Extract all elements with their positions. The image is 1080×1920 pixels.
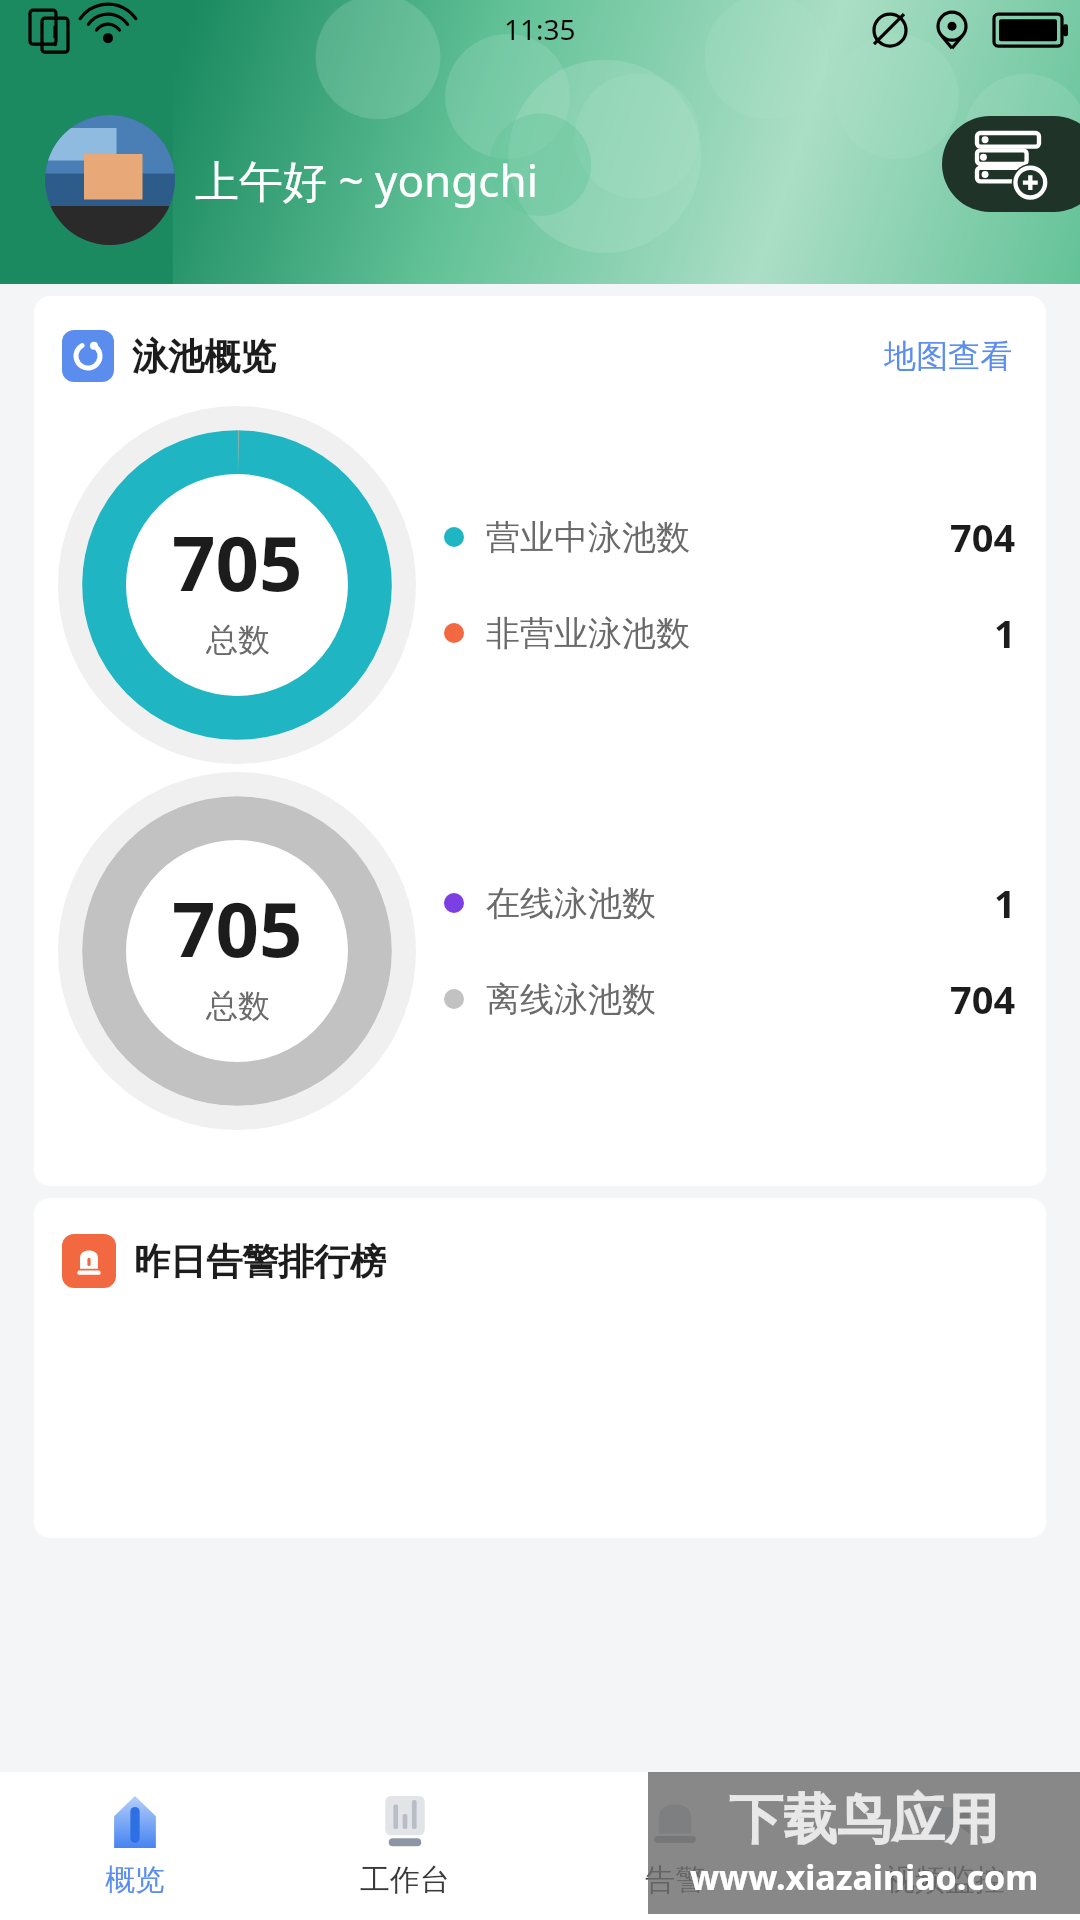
staticText: 地图查看 [884, 336, 1012, 376]
button[interactable]: 地图查看 [878, 330, 1018, 382]
button[interactable]: Add device [942, 116, 1080, 212]
staticText: 昨日告警排行榜 [134, 1239, 386, 1284]
staticText: 上午好 ~ yongchi [195, 150, 539, 210]
button[interactable]: 告警 [540, 1772, 810, 1920]
staticText: 在线泳池数 [486, 882, 656, 925]
staticText: 下载鸟应用 [729, 1786, 999, 1854]
staticText: 704 [950, 511, 1016, 563]
staticText: 非营业泳池数 [486, 612, 690, 655]
button[interactable]: 工作台 [270, 1772, 540, 1920]
staticText: 705 [172, 510, 303, 614]
staticText: 总数 [206, 620, 270, 660]
staticText: 营业中泳池数 [486, 516, 690, 559]
staticText: www.xiazainiao.com [690, 1854, 1039, 1900]
staticText: 泳池概览 [132, 334, 276, 379]
staticText: 1 [994, 877, 1016, 929]
staticText: 概览 [105, 1861, 165, 1899]
staticText: 总数 [206, 986, 270, 1026]
button[interactable]: 视频监控 [810, 1772, 1080, 1920]
staticText: 工作台 [360, 1861, 450, 1899]
staticText: 视频监控 [885, 1861, 1005, 1899]
staticText: 11:35 [504, 10, 576, 48]
staticText: 告警 [645, 1861, 705, 1899]
button[interactable]: Profile avatar [45, 115, 175, 245]
staticText: 704 [950, 973, 1016, 1025]
staticText: 离线泳池数 [486, 978, 656, 1021]
button[interactable]: 概览 [0, 1772, 270, 1920]
staticText: 1 [994, 607, 1016, 659]
staticText: 705 [172, 876, 303, 980]
